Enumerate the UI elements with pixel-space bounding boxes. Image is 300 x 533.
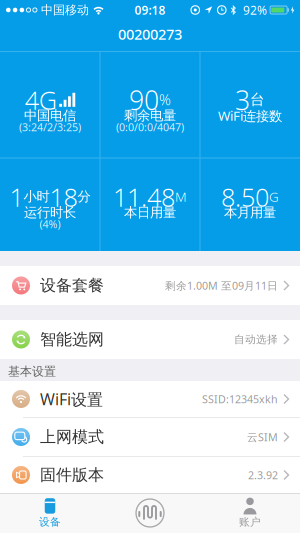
staticText: 云SIM	[247, 430, 278, 444]
staticText: M	[175, 188, 187, 205]
staticText: 11.48	[113, 180, 175, 214]
staticText: (0:0/0:0/4047)	[116, 120, 184, 134]
staticText: 智能选网	[40, 330, 104, 349]
staticText: 设备套餐	[40, 276, 104, 295]
staticText: (4%)	[39, 217, 60, 231]
staticText: 分	[77, 188, 90, 205]
staticText: 中国电信	[24, 107, 76, 124]
staticText: SSID:12345xkh	[202, 392, 278, 406]
staticText: 剩余电量	[124, 107, 176, 124]
staticText	[148, 217, 151, 231]
staticText: 8.50	[221, 180, 269, 214]
staticText: 18	[49, 180, 77, 214]
staticText: 90	[129, 82, 159, 118]
staticText: 上网模式	[40, 427, 104, 447]
staticText: %	[159, 90, 171, 109]
button[interactable]: 上网模式	[0, 418, 300, 456]
staticText: 92%	[243, 2, 267, 18]
button[interactable]: 设备	[0, 493, 100, 533]
staticText: 固件版本	[40, 465, 104, 485]
staticText: 4G	[25, 83, 57, 117]
staticText: 中国移动	[41, 3, 89, 17]
staticText: 2.3.92	[248, 468, 278, 482]
staticText: WiFi连接数	[218, 107, 282, 124]
button[interactable]: 固件版本	[0, 457, 300, 493]
button[interactable]: 设备套餐	[0, 266, 300, 305]
staticText: 小时	[23, 188, 49, 205]
staticText: 基本设置	[8, 364, 56, 379]
staticText: WiFi设置	[40, 388, 103, 410]
staticText: 运行时长	[24, 204, 76, 221]
staticText: 09:18	[134, 2, 165, 18]
staticText: 本日用量	[124, 204, 176, 221]
staticText: 设备	[39, 515, 61, 528]
staticText: (3:24/2/3:25)	[19, 120, 81, 134]
staticText: 账户	[239, 515, 261, 528]
staticText: G	[269, 188, 279, 205]
staticText: 自动选择	[234, 333, 278, 346]
button[interactable]: WiFi设置	[0, 381, 300, 417]
button[interactable]: 语音	[100, 493, 200, 533]
button[interactable]: 智能选网	[0, 320, 300, 359]
staticText: 1	[9, 180, 23, 214]
staticText: 3	[235, 82, 250, 118]
button[interactable]: 账户	[200, 493, 300, 533]
staticText	[248, 120, 251, 134]
staticText: 本月用量	[224, 204, 276, 221]
staticText: 台	[250, 90, 265, 108]
staticText: 00200273	[118, 24, 182, 44]
staticText	[248, 217, 251, 231]
staticText: 剩余1.00M 至09月11日	[165, 278, 278, 293]
